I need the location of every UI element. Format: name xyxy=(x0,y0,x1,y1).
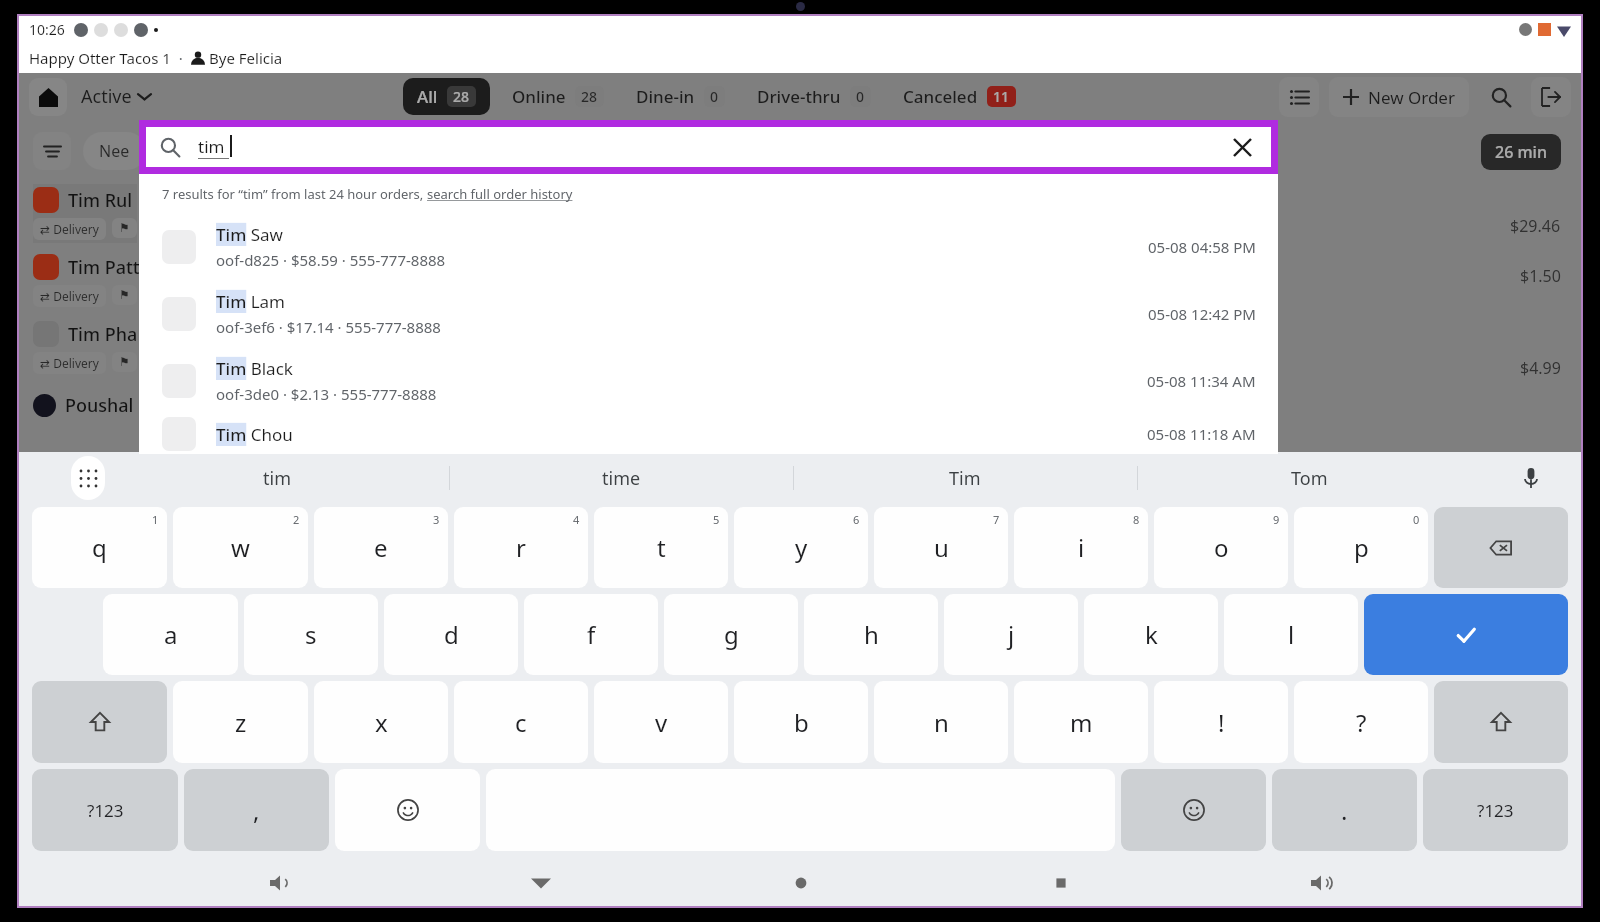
button[interactable]: search full order history xyxy=(427,185,573,203)
button[interactable]: l xyxy=(1224,594,1358,675)
button[interactable]: Tim Black xyxy=(139,347,1278,414)
staticText: Tim Saw xyxy=(216,223,283,246)
staticText: 05-08 11:34 AM xyxy=(1147,371,1256,391)
button[interactable]: Volume up xyxy=(1299,861,1343,905)
staticText: . xyxy=(1341,794,1348,827)
staticText: oof-3de0 · $2.13 · 555-777-8888 xyxy=(216,384,437,404)
button[interactable]: Active xyxy=(81,84,151,109)
button[interactable]: Search xyxy=(1481,77,1521,117)
button[interactable]: t xyxy=(594,507,728,588)
staticText: Bye Felicia xyxy=(209,48,283,68)
button[interactable]: Sign out xyxy=(1531,77,1571,117)
staticText: 28 xyxy=(453,87,470,106)
button[interactable]: Filter xyxy=(33,132,71,170)
button[interactable]: j xyxy=(944,594,1078,675)
staticText: ⚑ xyxy=(119,221,130,235)
button[interactable]: tim xyxy=(146,127,1271,167)
staticText: 10:26 xyxy=(29,20,65,39)
button[interactable]: e xyxy=(314,507,448,588)
staticText: w xyxy=(231,531,250,564)
button[interactable]: Voice input xyxy=(1481,452,1581,504)
staticText: 2 xyxy=(293,512,300,527)
staticText: m xyxy=(1070,706,1093,739)
button[interactable]: . xyxy=(1272,769,1417,851)
staticText: Dine-in xyxy=(636,85,695,108)
staticText: 05-08 12:42 PM xyxy=(1148,304,1256,324)
button[interactable]: Tim Chou xyxy=(139,414,1278,454)
button[interactable]: tim xyxy=(105,452,449,504)
button[interactable]: List view xyxy=(1279,77,1319,117)
button[interactable]: p xyxy=(1294,507,1428,588)
button[interactable]: v xyxy=(594,681,728,763)
button[interactable]: d xyxy=(384,594,518,675)
button[interactable]: Tim Patt xyxy=(33,254,140,307)
staticText: Tim Lam xyxy=(216,290,286,313)
staticText: l xyxy=(1288,618,1295,651)
button[interactable]: Home xyxy=(779,861,823,905)
button[interactable]: Emoji xyxy=(335,769,480,851)
button[interactable]: g xyxy=(664,594,798,675)
staticText: k xyxy=(1145,618,1158,651)
button[interactable]: time xyxy=(449,452,793,504)
button[interactable]: Tom xyxy=(1137,452,1481,504)
button[interactable]: s xyxy=(244,594,378,675)
button[interactable]: Volume down xyxy=(258,861,302,905)
button[interactable]: b xyxy=(734,681,868,763)
button[interactable]: Tim Lam xyxy=(139,280,1278,347)
staticText: time xyxy=(602,466,641,491)
button[interactable]: u xyxy=(874,507,1008,588)
button[interactable]: Shift xyxy=(32,681,167,763)
button[interactable]: Tim Saw xyxy=(139,213,1278,280)
staticText: y xyxy=(795,531,808,564)
button[interactable]: ? xyxy=(1294,681,1428,763)
staticText: · xyxy=(171,48,191,68)
button[interactable]: c xyxy=(454,681,588,763)
button[interactable]: Emoji xyxy=(1121,769,1266,851)
staticText: ?123 xyxy=(1477,799,1514,822)
button[interactable]: z xyxy=(173,681,308,763)
button[interactable]: k xyxy=(1084,594,1218,675)
button[interactable]: All xyxy=(403,78,490,115)
button[interactable]: Tim Pha xyxy=(33,321,138,374)
button[interactable]: a xyxy=(103,594,238,675)
button[interactable]: h xyxy=(804,594,938,675)
button[interactable]: o xyxy=(1154,507,1288,588)
button[interactable]: ?123 xyxy=(1423,769,1568,851)
button[interactable]: Keyboard options xyxy=(71,456,105,500)
button[interactable]: Backspace xyxy=(1434,507,1568,588)
button[interactable]: ! xyxy=(1154,681,1288,763)
button[interactable]: Tim xyxy=(793,452,1137,504)
button[interactable]: , xyxy=(184,769,329,851)
button[interactable]: Nee xyxy=(83,132,146,170)
button[interactable]: x xyxy=(314,681,448,763)
button[interactable]: Enter xyxy=(1364,594,1568,675)
staticText: 28 xyxy=(581,87,598,106)
button[interactable]: New Order xyxy=(1329,77,1469,117)
staticText: ⇄ Delivery xyxy=(40,288,99,304)
staticText: Tim Patt xyxy=(68,255,140,280)
button[interactable]: Canceled xyxy=(893,78,1026,115)
button[interactable]: Clear xyxy=(1227,132,1257,162)
staticText: p xyxy=(1354,531,1369,564)
button[interactable]: Recents xyxy=(1039,861,1083,905)
button[interactable]: ?123 xyxy=(32,769,178,851)
button[interactable]: Tim Rul xyxy=(33,187,137,240)
button[interactable]: r xyxy=(454,507,588,588)
button[interactable]: Dine-in xyxy=(626,78,735,115)
button[interactable]: Back xyxy=(519,861,563,905)
button[interactable]: w xyxy=(173,507,308,588)
button[interactable]: f xyxy=(524,594,658,675)
staticText: oof-3ef6 · $17.14 · 555-777-8888 xyxy=(216,317,441,337)
button[interactable]: n xyxy=(874,681,1008,763)
button[interactable]: Home xyxy=(29,78,67,116)
button[interactable]: m xyxy=(1014,681,1148,763)
button[interactable]: y xyxy=(734,507,868,588)
button[interactable]: i xyxy=(1014,507,1148,588)
staticText: z xyxy=(235,706,247,739)
button[interactable]: q xyxy=(32,507,167,588)
button[interactable]: Drive-thru xyxy=(747,78,881,115)
button[interactable]: Shift xyxy=(1434,681,1568,763)
button[interactable]: Online xyxy=(502,78,614,115)
staticText: Tom xyxy=(1291,466,1328,491)
